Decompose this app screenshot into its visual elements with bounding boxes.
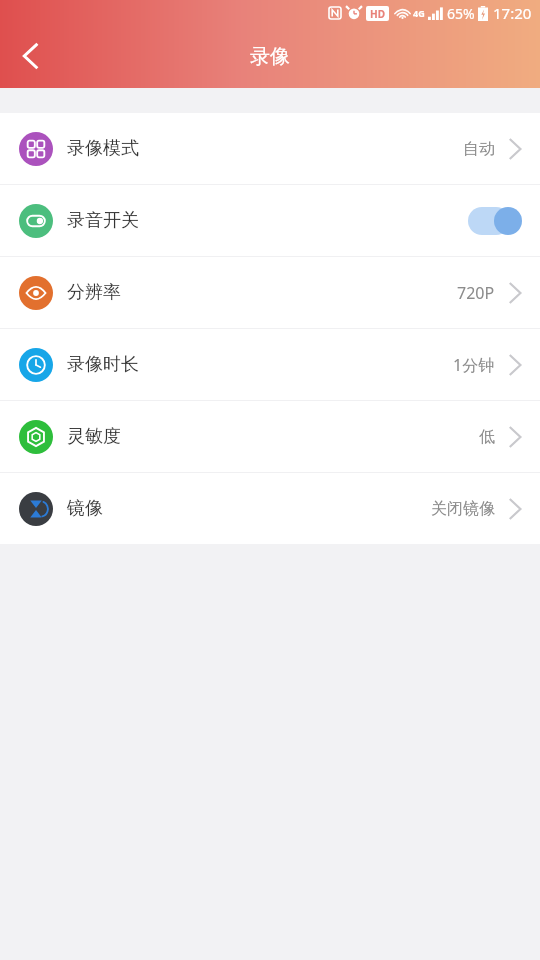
staticText: 录像 [0,44,540,69]
staticText: 4G [413,7,425,19]
staticText: HD [370,7,385,21]
staticText: 关闭镜像 [431,499,495,519]
staticText: 录像时长 [67,353,139,376]
staticText: 灵敏度 [67,425,121,448]
button[interactable]: 分辨率 [0,257,540,328]
staticText: 65% [447,4,475,23]
button[interactable]: 镜像 [0,473,540,544]
staticText: 1分钟 [453,354,495,376]
staticText: 低 [479,427,495,447]
button[interactable]: 录音开关 [0,185,540,256]
staticText: 镜像 [67,497,103,520]
button[interactable]: 返回 [0,28,62,84]
button[interactable]: 录像时长 [0,329,540,400]
staticText: 17:20 [493,3,532,23]
button[interactable]: 录像模式 [0,113,540,184]
button[interactable]: 灵敏度 [0,401,540,472]
staticText: 分辨率 [67,281,121,304]
staticText: 录音开关 [67,209,139,232]
staticText: 录像模式 [67,137,139,160]
staticText: 720P [457,282,495,304]
staticText: 自动 [463,139,495,159]
